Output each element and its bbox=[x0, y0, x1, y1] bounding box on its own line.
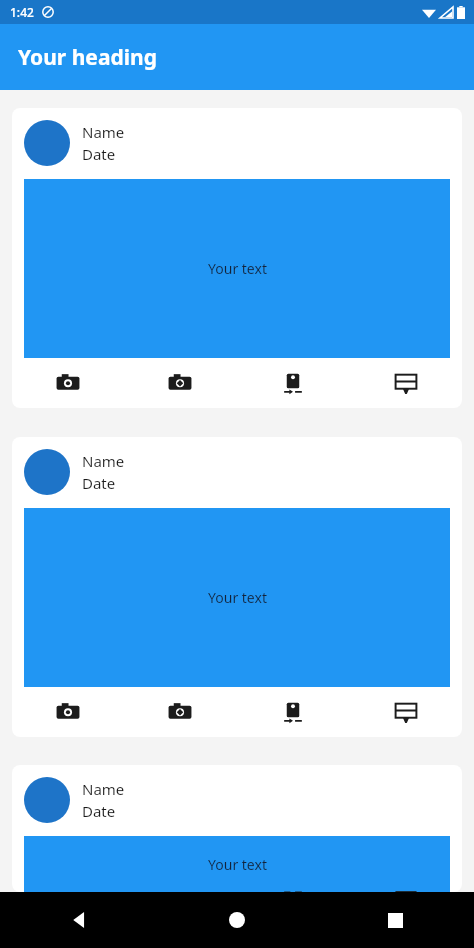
staticText: Your text bbox=[208, 588, 267, 607]
button[interactable]: Recent apps bbox=[316, 892, 474, 948]
button[interactable]: Take photo bbox=[12, 687, 124, 737]
button[interactable]: Home bbox=[158, 892, 316, 948]
staticText: Name bbox=[82, 122, 125, 142]
button[interactable]: Name bbox=[12, 108, 462, 408]
staticText: Your text bbox=[208, 259, 267, 278]
button[interactable]: Take photo bbox=[12, 358, 124, 408]
button[interactable]: Send to device bbox=[236, 687, 349, 737]
button[interactable]: Send to device bbox=[236, 358, 349, 408]
button[interactable]: Web asset bbox=[349, 358, 462, 408]
button[interactable]: Back bbox=[0, 892, 158, 948]
staticText: Date bbox=[82, 473, 116, 493]
button[interactable]: Name bbox=[12, 437, 462, 737]
button[interactable]: Name bbox=[12, 765, 462, 892]
staticText: 1:42 bbox=[10, 4, 34, 20]
button[interactable]: Web asset bbox=[349, 687, 462, 737]
staticText: Date bbox=[82, 144, 116, 164]
button[interactable]: Add photo bbox=[124, 687, 236, 737]
staticText: Your text bbox=[208, 855, 267, 874]
staticText: Name bbox=[82, 779, 125, 799]
staticText: Date bbox=[82, 801, 116, 821]
staticText: Name bbox=[82, 451, 125, 471]
staticText: Your heading bbox=[18, 43, 157, 72]
button[interactable]: Add photo bbox=[124, 358, 236, 408]
